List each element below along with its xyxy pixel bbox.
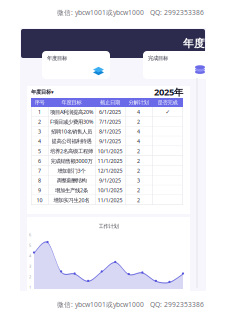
staticText: 2 xyxy=(137,118,140,125)
staticText: 3 xyxy=(137,177,140,184)
staticText: 完成目标 xyxy=(148,55,168,62)
button[interactable]: 完成目标 xyxy=(143,51,211,79)
staticText: 招聘10名销售人员 xyxy=(51,128,92,135)
staticText: 6 xyxy=(29,232,31,237)
staticText: 调整薪酬结构 xyxy=(56,177,86,184)
staticText: ✓ xyxy=(165,109,169,115)
staticText: 3 xyxy=(29,264,31,269)
staticText: 4 xyxy=(29,253,31,258)
staticText: 微信: ybcw1001或ybcw1000 QQ: 2992353386 xyxy=(57,8,204,17)
staticText: 是否完成 xyxy=(157,99,177,106)
staticText: 微信: ybcw1001或ybcw1000 QQ: 2992353386 xyxy=(57,300,204,309)
staticText: 4 xyxy=(137,128,140,135)
staticText: 11/1/2025 xyxy=(97,157,122,164)
staticText: 年度目标 xyxy=(47,55,67,62)
staticText: 年度目标▾ xyxy=(31,89,54,95)
staticText: 4 xyxy=(137,138,140,145)
staticText: 年度目标 xyxy=(61,99,81,106)
staticText: 完成销售额3000万 xyxy=(50,157,92,164)
staticText: 5 xyxy=(38,148,41,155)
staticText: 2 xyxy=(38,118,41,125)
staticText: 8 xyxy=(38,177,41,184)
staticText: 4 xyxy=(137,108,140,115)
staticText: 7/1/2025 xyxy=(99,118,121,125)
staticText: 6/1/2025 xyxy=(99,108,121,115)
staticText: 项目A利润提高20% xyxy=(50,108,93,115)
staticText: 9/1/2025 xyxy=(99,177,121,184)
staticText: 增加实习生20名 xyxy=(53,197,89,204)
staticText: 8/1/2025 xyxy=(99,128,121,135)
staticText: 10 xyxy=(36,197,42,204)
staticText: 培养2名高级工程师 xyxy=(50,148,93,155)
staticText: 分解计划 xyxy=(128,99,148,106)
staticText: 工作计划 xyxy=(98,223,118,230)
staticText: 5 xyxy=(29,243,31,248)
staticText: 2 xyxy=(137,167,140,174)
staticText: 年度 xyxy=(183,37,205,50)
staticText: 2 xyxy=(137,197,140,204)
staticText: 1 xyxy=(38,108,41,115)
staticText: 增加部门3个 xyxy=(57,167,85,174)
staticText: 3 xyxy=(38,128,41,135)
staticText: 10/1/2025 xyxy=(97,148,122,155)
staticText: 11/1/2025 xyxy=(97,197,122,204)
staticText: 9/1/2025 xyxy=(99,138,121,145)
staticText: 2025年 xyxy=(154,86,183,98)
staticText: 6 xyxy=(38,157,41,164)
staticText: 9 xyxy=(38,187,41,194)
staticText: 提高公司福利待遇 xyxy=(51,138,91,145)
staticText: 12/1/2025 xyxy=(97,167,122,174)
staticText: 2 xyxy=(137,187,140,194)
staticText: 10/1/2025 xyxy=(97,187,122,194)
button[interactable]: 年度目标 xyxy=(42,51,110,79)
staticText: 2 xyxy=(137,157,140,164)
staticText: 序号 xyxy=(34,99,44,106)
staticText: 2 xyxy=(29,274,31,279)
staticText: 1 xyxy=(29,285,31,290)
staticText: F项目减少费用30% xyxy=(50,118,93,125)
staticText: 2 xyxy=(137,148,140,155)
staticText: 7 xyxy=(38,167,41,174)
staticText: 4 xyxy=(38,138,41,145)
staticText: 截止日期 xyxy=(100,99,120,106)
staticText: 增加生产线2条 xyxy=(55,187,88,194)
